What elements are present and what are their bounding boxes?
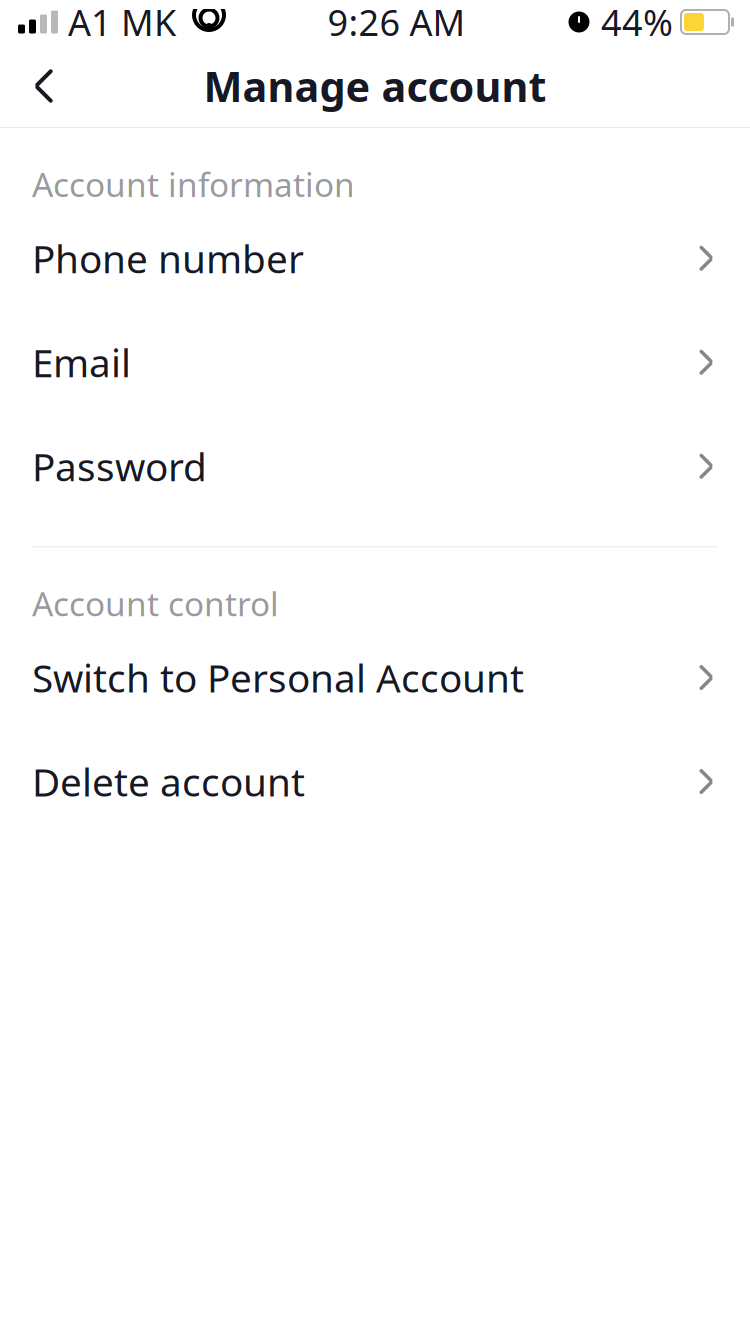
button[interactable]: Delete account (0, 729, 750, 833)
staticText: Switch to Personal Account (32, 652, 524, 703)
button[interactable]: Back (0, 44, 88, 128)
button[interactable]: Password (0, 414, 750, 518)
button[interactable]: Switch to Personal Account (0, 625, 750, 729)
button[interactable]: Email (0, 310, 750, 414)
staticText: 9:26 AM (327, 0, 465, 46)
button[interactable]: Phone number (0, 206, 750, 310)
staticText: Email (32, 337, 131, 388)
staticText: A1 MK (68, 0, 176, 46)
staticText: 44% (601, 0, 673, 46)
staticText: Phone number (32, 233, 304, 284)
staticText: Delete account (32, 756, 305, 807)
staticText: Password (32, 441, 207, 492)
staticText: Account information (32, 162, 355, 206)
staticText: Manage account (203, 59, 546, 113)
staticText: Account control (32, 581, 279, 626)
